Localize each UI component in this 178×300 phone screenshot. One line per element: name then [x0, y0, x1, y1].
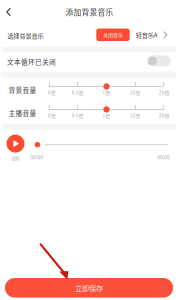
staticText: 10倍 [130, 89, 141, 96]
staticText: 0.5倍 [72, 112, 84, 119]
staticText: 主播音量 [8, 108, 36, 118]
staticText: 1倍 [102, 89, 110, 96]
staticText: 00:00 [157, 154, 170, 160]
staticText: 20倍 [159, 89, 170, 96]
staticText: 立即保存 [75, 283, 103, 293]
button[interactable]: 关闭音乐 [96, 28, 130, 41]
button[interactable]: 立即保存 [5, 278, 173, 298]
staticText: 00:00 [30, 154, 43, 160]
staticText: 0倍 [48, 112, 56, 119]
staticText: 10倍 [130, 112, 141, 119]
staticText: 1倍 [102, 112, 110, 119]
button[interactable]: 轻音乐A [133, 25, 171, 44]
button[interactable]: 返回 [0, 2, 18, 22]
button[interactable]: 试听 [6, 135, 24, 162]
staticText: 0.5倍 [72, 89, 84, 96]
staticText: 20倍 [159, 112, 170, 119]
staticText: 试听 [11, 156, 19, 162]
staticText: 选择背景音乐 [7, 31, 43, 40]
button[interactable]: 文本循环开关 [142, 50, 176, 71]
staticText: 背景音量 [8, 85, 36, 95]
staticText: 0倍 [48, 89, 56, 96]
staticText: 轻音乐A [136, 30, 158, 39]
staticText: 添加背景音乐 [65, 6, 113, 18]
staticText: 关闭音乐 [103, 31, 123, 38]
staticText: 文本循环已关闭 [7, 57, 56, 66]
